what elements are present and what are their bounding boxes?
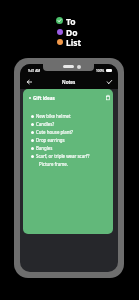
staticText: List (66, 37, 82, 49)
staticText: Cute house plant? (36, 129, 73, 135)
staticText: Drop earrings (36, 137, 65, 143)
staticText: Candles? (36, 121, 55, 127)
staticText: 9:41 AM (28, 69, 41, 73)
button[interactable]: Done (104, 77, 114, 87)
staticText: 100% (96, 69, 105, 73)
staticText: Picture frame. (39, 161, 68, 167)
staticText: Notes (62, 79, 76, 85)
staticText: To (66, 16, 76, 28)
staticText: New bike helmet (36, 113, 71, 119)
staticText: Do (66, 27, 78, 39)
button[interactable]: Back (24, 77, 34, 87)
button[interactable]: Delete (102, 92, 113, 103)
staticText: Gift ideas (33, 95, 55, 101)
staticText: Bangles (36, 145, 53, 151)
staticText: Scarf, or triple wear scarf? (36, 153, 90, 159)
